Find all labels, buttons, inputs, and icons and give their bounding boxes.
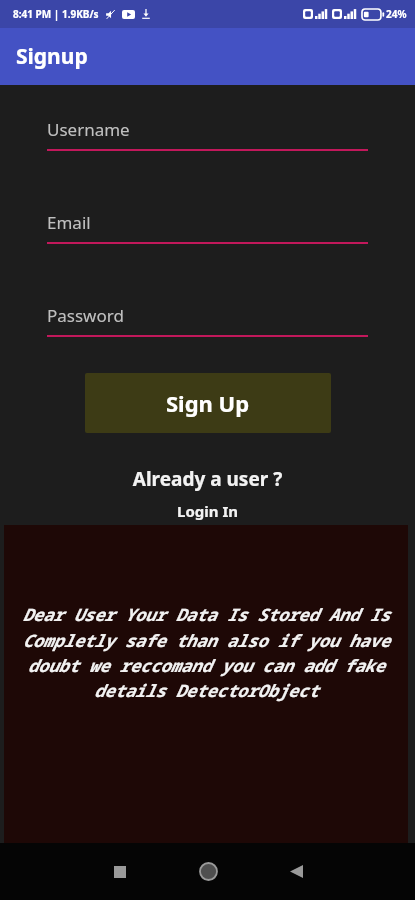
staticText: 8:41 PM | 1.9KB/s (13, 7, 99, 21)
staticText: Email (47, 211, 91, 234)
staticText: Dear User Your Data Is Stored And Is Com… (12, 603, 400, 702)
button[interactable]: Email (47, 211, 368, 244)
button[interactable]: Home (179, 843, 237, 900)
staticText: Username (47, 118, 130, 141)
button[interactable]: Already a user ? (0, 466, 415, 492)
button[interactable]: Password (47, 304, 368, 337)
staticText: 24% (386, 7, 407, 21)
button[interactable]: Sign Up (85, 373, 331, 433)
staticText: Sign Up (166, 388, 250, 418)
button[interactable]: Back (267, 843, 325, 900)
button[interactable]: Recent apps (91, 843, 149, 900)
button[interactable]: Login In (0, 501, 415, 521)
button[interactable]: Username (47, 118, 368, 151)
staticText: Password (47, 304, 124, 327)
staticText: Signup (16, 42, 88, 71)
